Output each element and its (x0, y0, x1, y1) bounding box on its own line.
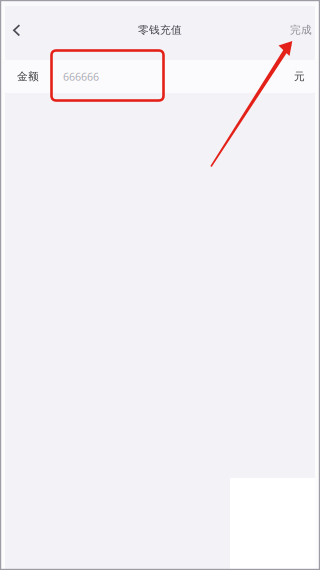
button[interactable]: Back (0, 16, 38, 44)
button[interactable]: 完成 (282, 16, 320, 44)
staticText: 666666 (63, 69, 99, 84)
staticText: 零钱充值 (138, 23, 182, 36)
staticText: 金额 (17, 70, 39, 83)
staticText: 完成 (290, 23, 312, 36)
staticText: 元 (294, 70, 305, 83)
